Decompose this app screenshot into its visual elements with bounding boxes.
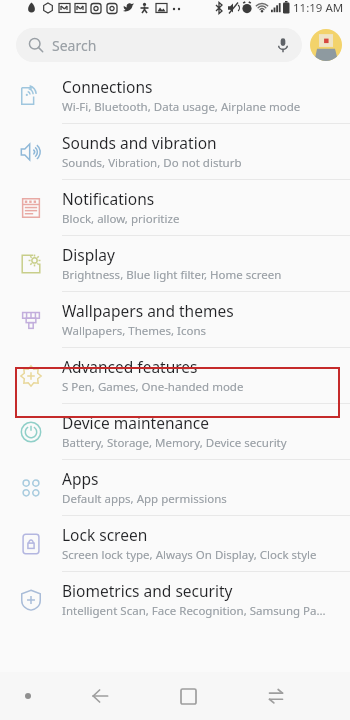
button[interactable]: Voice search [274,36,292,54]
button[interactable]: Device maintenance [0,404,350,459]
staticText: Default apps, App permissions [62,491,227,507]
staticText: Advanced features [62,356,198,377]
staticText: Intelligent Scan, Face Recognition, Sams… [62,603,326,619]
button[interactable]: Sounds and vibration [0,124,350,179]
button[interactable]: Lock screen [0,516,350,571]
button[interactable]: Search [16,28,302,62]
staticText: Battery, Storage, Memory, Device securit… [62,435,287,451]
staticText: Device maintenance [62,412,209,433]
button[interactable]: Display [0,236,350,291]
button[interactable]: Apps [0,460,350,515]
staticText: Brightness, Blue light filter, Home scre… [62,267,282,283]
staticText: Display [62,244,115,265]
staticText: Search [52,36,97,55]
button[interactable]: Keyboard indicator [0,672,56,720]
staticText: Biometrics and security [62,580,233,601]
button[interactable]: Biometrics and security [0,572,350,627]
staticText: S Pen, Games, One-handed mode [62,379,244,395]
button[interactable]: Recents [232,672,320,720]
button[interactable]: Advanced features [0,348,350,403]
button[interactable]: Home [144,672,232,720]
button[interactable]: Notifications [0,180,350,235]
staticText: Block, allow, prioritize [62,211,180,227]
staticText: Lock screen [62,524,148,545]
staticText: Screen lock type, Always On Display, Clo… [62,547,317,563]
staticText: Connections [62,76,153,97]
staticText: Notifications [62,188,155,209]
staticText: Sounds and vibration [62,132,217,153]
button[interactable]: Back [56,672,144,720]
staticText: Apps [62,468,99,489]
button[interactable]: Account [310,29,342,61]
staticText: Wi-Fi, Bluetooth, Data usage, Airplane m… [62,99,301,115]
staticText: 11:19 AM [293,0,344,16]
staticText: Wallpapers, Themes, Icons [62,323,207,339]
button[interactable]: Connections [0,68,350,123]
button[interactable]: Wallpapers and themes [0,292,350,347]
staticText: Sounds, Vibration, Do not disturb [62,155,242,171]
staticText: Wallpapers and themes [62,300,234,321]
